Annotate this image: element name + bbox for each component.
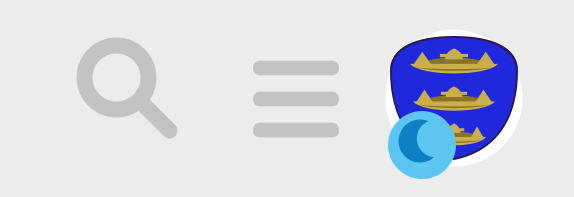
button[interactable]: Menu: [253, 61, 339, 137]
button[interactable]: Search: [76, 37, 177, 138]
button[interactable]: Profile: [385, 29, 522, 166]
